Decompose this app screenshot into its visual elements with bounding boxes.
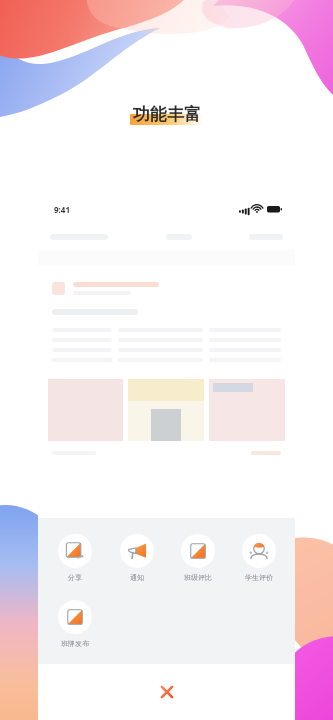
button[interactable]: 关闭 [152, 677, 182, 707]
button[interactable]: 通知 [106, 530, 167, 586]
staticText: 班级评比 [184, 573, 212, 582]
button[interactable]: 学生评价 [228, 530, 289, 586]
staticText: 班牌发布 [61, 639, 89, 648]
button[interactable]: 班牌发布 [44, 596, 105, 652]
staticText: 分享 [68, 573, 82, 582]
staticText: 9:41 [54, 204, 70, 215]
staticText: 通知 [130, 573, 144, 582]
button[interactable]: 班级评比 [167, 530, 228, 586]
button[interactable]: 分享 [44, 530, 106, 586]
staticText: 功能丰富 [133, 104, 201, 125]
staticText: 学生评价 [245, 573, 273, 582]
